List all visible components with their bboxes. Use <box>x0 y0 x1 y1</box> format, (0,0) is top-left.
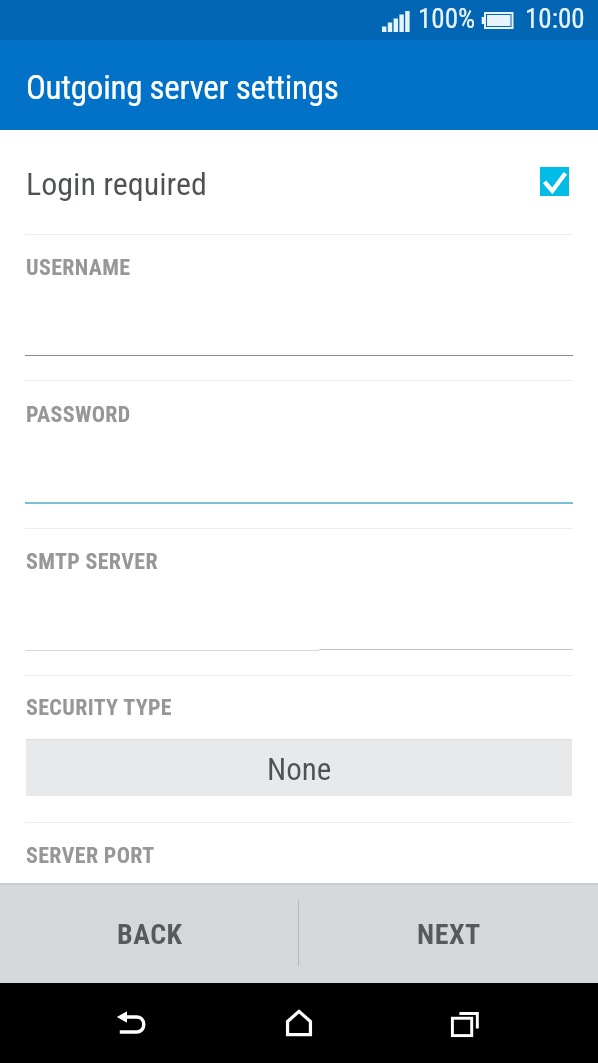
staticText: SECURITY TYPE <box>26 695 172 721</box>
button[interactable] <box>0 823 598 883</box>
staticText: PASSWORD <box>26 402 131 428</box>
staticText: BACK <box>117 918 183 951</box>
staticText: 10:00 <box>525 3 585 35</box>
button[interactable]: Home <box>259 983 339 1063</box>
button[interactable] <box>0 381 598 528</box>
staticText: SERVER PORT <box>26 843 155 869</box>
button[interactable]: None <box>26 739 572 796</box>
staticText: USERNAME <box>26 255 131 281</box>
button[interactable]: Back <box>93 983 173 1063</box>
button[interactable]: BACK <box>0 883 299 983</box>
staticText: None <box>267 751 332 787</box>
button[interactable]: Recent apps <box>425 983 505 1063</box>
staticText: 100% <box>418 3 476 35</box>
button[interactable] <box>0 529 598 675</box>
button[interactable]: Login required <box>0 130 598 234</box>
staticText: Outgoing server settings <box>26 68 339 107</box>
staticText: NEXT <box>417 918 481 951</box>
button[interactable] <box>0 235 598 380</box>
staticText: SMTP SERVER <box>26 549 158 575</box>
button[interactable]: NEXT <box>299 883 598 983</box>
staticText: Login required <box>26 165 207 203</box>
